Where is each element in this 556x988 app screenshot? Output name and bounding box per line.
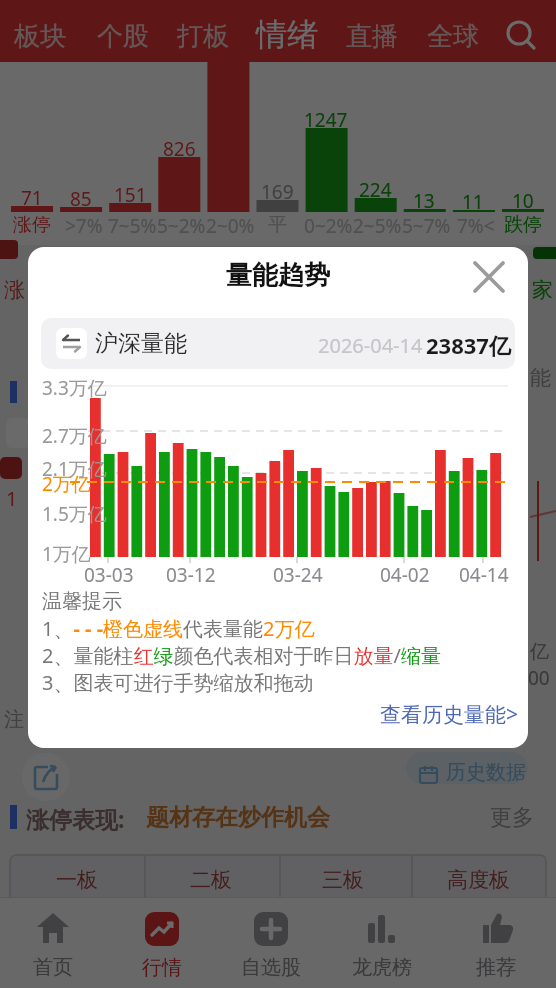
- staticText: 11: [462, 189, 484, 215]
- button[interactable]: 龙虎榜: [348, 905, 416, 983]
- button[interactable]: 查看历史量能>: [28, 247, 167, 276]
- staticText: 04-14: [459, 562, 509, 588]
- staticText: 13: [413, 188, 435, 214]
- button[interactable]: 推荐: [465, 905, 527, 983]
- staticText: 2~0%: [206, 213, 255, 239]
- staticText: 能: [530, 365, 551, 391]
- staticText: 1、- - -橙色虚线代表量能2万亿: [42, 615, 315, 642]
- staticText: 00: [528, 665, 550, 691]
- staticText: 自选股: [241, 955, 301, 980]
- staticText: 03-24: [273, 562, 323, 588]
- staticText: >7%: [65, 213, 103, 239]
- staticText: 题材存在炒作机会: [146, 803, 330, 832]
- staticText: 5~2%: [157, 213, 206, 239]
- staticText: 龙虎榜: [352, 955, 412, 980]
- button[interactable]: [503, 18, 539, 54]
- staticText: 04-02: [380, 562, 430, 588]
- staticText: 三板: [322, 867, 364, 893]
- staticText: 2~5%: [353, 213, 402, 239]
- staticText: 0~2%: [304, 213, 353, 239]
- staticText: 2026-04-14: [318, 332, 423, 359]
- staticText: 03-03: [84, 562, 134, 588]
- button[interactable]: 首页: [24, 905, 82, 983]
- staticText: 224: [359, 177, 392, 203]
- staticText: 量能趋势: [226, 259, 330, 292]
- staticText: 行情: [142, 955, 182, 980]
- staticText: 一板: [56, 867, 98, 893]
- staticText: 历史数据: [446, 760, 526, 784]
- button[interactable]: 情绪: [0, 0, 62, 39]
- staticText: 涨: [4, 277, 25, 303]
- staticText: 跌停: [504, 213, 542, 237]
- staticText: 151: [114, 182, 147, 208]
- button[interactable]: 自选股: [237, 905, 305, 983]
- staticText: 1247: [304, 107, 348, 133]
- staticText: 7~5%: [108, 213, 157, 239]
- staticText: 温馨提示: [42, 589, 122, 614]
- staticText: 1.5万亿: [42, 501, 107, 527]
- staticText: 高度板: [447, 867, 510, 893]
- staticText: 2万亿: [42, 471, 91, 497]
- staticText: 2.7万亿: [42, 423, 107, 449]
- staticText: 71: [21, 185, 43, 211]
- staticText: 03-12: [166, 562, 216, 588]
- staticText: 7%<: [457, 213, 495, 239]
- staticText: 沪深量能: [95, 329, 187, 358]
- button[interactable]: 直播: [0, 0, 52, 33]
- button[interactable]: 打板: [0, 0, 52, 33]
- staticText: 2.1万亿: [42, 456, 107, 482]
- staticText: 涨停: [13, 213, 51, 237]
- staticText: 首页: [33, 955, 73, 980]
- button[interactable]: 更多: [0, 245, 44, 273]
- staticText: 2、量能柱红绿颜色代表相对于昨日放量/缩量: [42, 642, 441, 669]
- staticText: 家: [532, 277, 553, 303]
- button[interactable]: [22, 753, 70, 801]
- staticText: 注: [4, 707, 24, 732]
- staticText: 23837亿: [426, 330, 511, 360]
- staticText: 10: [512, 188, 534, 214]
- staticText: 3.3万亿: [42, 375, 107, 401]
- staticText: 85: [70, 186, 92, 212]
- staticText: 涨停表现:: [26, 803, 125, 834]
- staticText: 推荐: [476, 955, 516, 980]
- button[interactable]: 全球: [0, 0, 52, 33]
- button[interactable]: 个股: [0, 0, 52, 33]
- staticText: 169: [261, 179, 294, 205]
- button[interactable]: 行情: [133, 905, 191, 983]
- button[interactable]: 板块: [0, 0, 52, 33]
- staticText: 亿: [530, 640, 549, 664]
- staticText: 3、图表可进行手势缩放和拖动: [42, 669, 314, 696]
- button[interactable]: [469, 257, 513, 301]
- staticText: 5~7%: [402, 213, 451, 239]
- staticText: 1: [6, 485, 18, 512]
- staticText: 二板: [190, 867, 232, 893]
- button[interactable]: 历史数据: [406, 752, 528, 784]
- staticText: 平: [268, 213, 287, 237]
- button[interactable]: 沪深量能: [41, 318, 515, 369]
- staticText: 826: [163, 136, 196, 162]
- staticText: 1万亿: [42, 541, 91, 567]
